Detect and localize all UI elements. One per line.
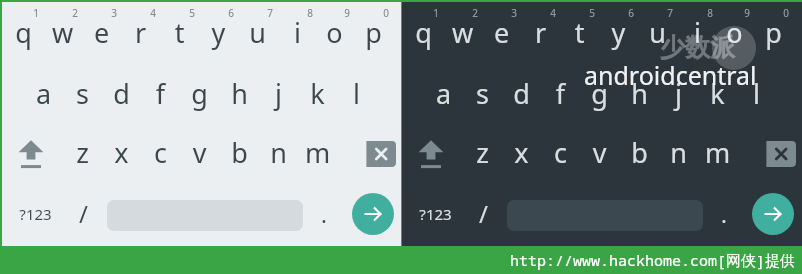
button[interactable]: v [170,134,229,171]
button[interactable]: v [570,134,629,171]
staticText: 2 [64,6,86,20]
button[interactable]: 5 [181,6,203,20]
staticText: c [531,134,590,171]
button[interactable]: q [0,14,53,51]
button[interactable]: f [531,75,590,112]
button[interactable]: j [649,75,708,112]
button[interactable]: 3 [103,6,125,20]
button[interactable]: 4 [542,6,564,20]
button[interactable]: a [14,75,73,112]
button[interactable]: 1 [425,6,447,20]
button[interactable]: u [228,14,287,51]
staticText: http://www.hackhome.com[网侠]提供 [510,250,796,270]
button[interactable]: g [170,75,229,112]
button[interactable]: b [610,134,669,171]
button[interactable]: Backspace [756,141,796,167]
button[interactable]: y [589,14,648,51]
button[interactable]: x [92,134,151,171]
button[interactable]: 7 [259,6,281,20]
button[interactable]: 0 [375,6,397,20]
button[interactable]: r [111,14,170,51]
button[interactable]: 7 [659,6,681,20]
staticText: d [92,75,151,112]
button[interactable]: z [53,134,112,171]
button[interactable]: r [511,14,570,51]
button[interactable]: h [610,75,669,112]
staticText: f [531,75,590,112]
staticText: . [300,199,348,229]
button[interactable]: j [249,75,308,112]
button[interactable]: 9 [336,6,358,20]
button[interactable]: a [414,75,473,112]
button[interactable]: . [300,199,348,229]
button[interactable]: c [131,134,190,171]
button[interactable]: e [472,14,531,51]
button[interactable]: n [649,134,708,171]
button[interactable]: ?123 [419,204,452,224]
button[interactable]: Shift [11,133,51,173]
staticText: 0 [775,6,797,20]
button[interactable]: Backspace [356,141,396,167]
button[interactable]: 2 [464,6,486,20]
button[interactable]: ?123 [19,204,52,224]
button[interactable]: z [453,134,512,171]
button[interactable]: 2 [64,6,86,20]
button[interactable]: q [394,14,453,51]
button[interactable]: 6 [220,6,242,20]
button[interactable]: / [457,197,510,230]
button[interactable]: 5 [581,6,603,20]
button[interactable]: t [550,14,609,51]
button[interactable]: e [72,14,131,51]
button[interactable]: 8 [699,6,721,20]
button[interactable]: 8 [299,6,321,20]
button[interactable]: c [531,134,590,171]
button[interactable]: l [327,75,386,112]
button[interactable]: Shift [411,133,451,173]
button[interactable]: i [668,14,727,51]
button[interactable]: m [288,134,347,171]
button[interactable]: p [344,14,403,51]
button[interactable]: h [210,75,269,112]
button[interactable]: 1 [25,6,47,20]
button[interactable]: g [570,75,629,112]
button[interactable]: 6 [620,6,642,20]
button[interactable]: o [305,14,364,51]
button[interactable]: 9 [736,6,758,20]
button[interactable]: i [268,14,327,51]
button[interactable]: d [92,75,151,112]
button[interactable]: . [700,199,748,229]
button[interactable]: 0 [775,6,797,20]
button[interactable]: / [57,197,110,230]
button[interactable]: m [688,134,747,171]
staticText: / [57,197,110,230]
staticText: 1 [425,6,447,20]
button[interactable]: Enter [352,193,394,235]
staticText: q [394,14,453,51]
button[interactable]: 3 [503,6,525,20]
button[interactable]: t [150,14,209,51]
staticText: v [170,134,229,171]
button[interactable]: Enter [752,193,794,235]
button[interactable]: x [492,134,551,171]
button[interactable]: n [249,134,308,171]
button[interactable]: d [492,75,551,112]
button[interactable]: w [33,14,92,51]
button[interactable]: u [628,14,687,51]
button[interactable]: s [53,75,112,112]
button[interactable]: w [433,14,492,51]
button[interactable]: p [744,14,802,51]
button[interactable]: l [727,75,786,112]
button[interactable]: s [453,75,512,112]
staticText: b [610,134,669,171]
button[interactable]: k [288,75,347,112]
button[interactable]: k [688,75,747,112]
button[interactable]: b [210,134,269,171]
staticText: p [744,14,802,51]
button[interactable]: o [705,14,764,51]
button[interactable]: 4 [142,6,164,20]
button[interactable]: f [131,75,190,112]
staticText: 5 [181,6,203,20]
button[interactable]: y [189,14,248,51]
